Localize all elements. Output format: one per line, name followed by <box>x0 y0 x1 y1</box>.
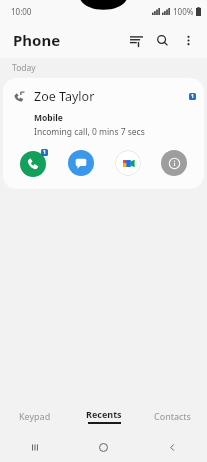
button[interactable]: Home <box>69 432 138 462</box>
button[interactable]: Recents <box>69 400 138 432</box>
staticText: 1 <box>43 149 46 156</box>
button[interactable]: Call <box>20 149 48 177</box>
staticText: Phone <box>13 30 61 50</box>
button[interactable]: Video call <box>115 150 141 176</box>
button[interactable]: Zoe Taylor <box>3 78 204 189</box>
staticText: Recents <box>86 408 122 420</box>
staticText: 10:00 <box>11 6 32 17</box>
staticText: Contacts <box>154 410 191 422</box>
staticText: Incoming call, 0 mins 7 secs <box>34 126 145 138</box>
button[interactable]: Contacts <box>138 400 207 432</box>
staticText: 100% <box>173 6 194 17</box>
staticText: Today <box>12 62 36 74</box>
button[interactable]: Back <box>138 432 207 462</box>
staticText: Mobile <box>34 112 63 124</box>
button[interactable]: Keypad <box>0 400 69 432</box>
button[interactable]: More options <box>175 27 201 53</box>
button[interactable]: Sort <box>123 27 149 53</box>
button[interactable]: Search <box>149 27 175 53</box>
button[interactable]: Recent apps <box>0 432 69 462</box>
staticText: Zoe Taylor <box>34 88 95 105</box>
button[interactable]: Details <box>161 150 187 176</box>
button[interactable]: Message <box>68 150 94 176</box>
staticText: Keypad <box>19 410 51 422</box>
staticText: 1 <box>191 93 194 100</box>
